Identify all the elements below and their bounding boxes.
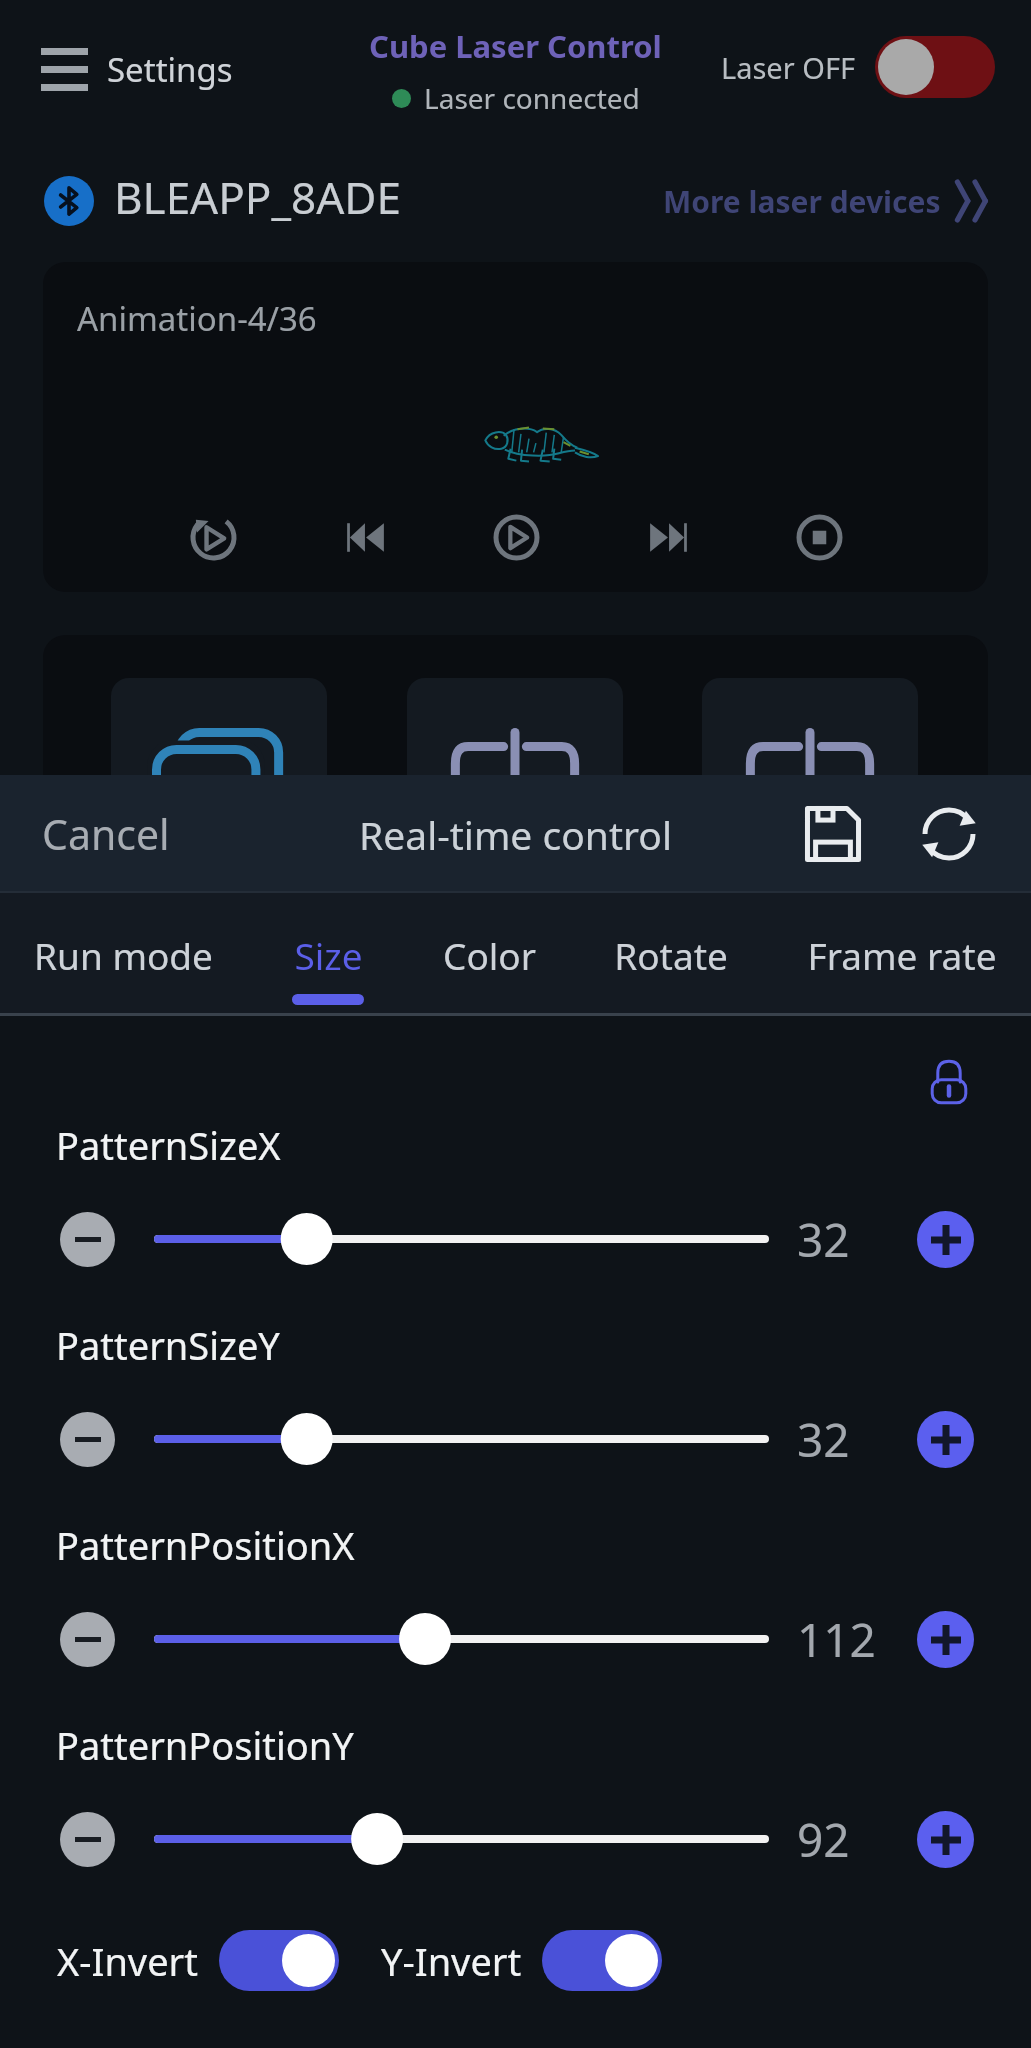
staticText: PatternSizeX bbox=[56, 1119, 281, 1171]
staticText: Y-Invert bbox=[381, 1935, 522, 1987]
button[interactable]: Increase PatternPositionX bbox=[917, 1611, 974, 1668]
staticText: Laser OFF bbox=[721, 48, 855, 87]
button[interactable]: Lock bbox=[913, 1046, 985, 1118]
button[interactable]: Size bbox=[292, 893, 364, 1016]
staticText: Laser connected bbox=[424, 79, 640, 117]
staticText: PatternPositionY bbox=[56, 1719, 354, 1771]
staticText: BLEAPP_8ADE bbox=[114, 167, 401, 227]
staticText: Real-time control bbox=[359, 808, 672, 861]
button[interactable]: Decrease PatternSizeY bbox=[60, 1412, 115, 1467]
button[interactable]: Cancel bbox=[42, 806, 170, 862]
button[interactable]: X-Invert bbox=[57, 1930, 339, 1991]
button[interactable] bbox=[407, 678, 623, 868]
button[interactable]: Decrease PatternPositionX bbox=[60, 1612, 115, 1667]
staticText: Size bbox=[294, 930, 363, 980]
button[interactable]: Increase PatternSizeY bbox=[917, 1411, 974, 1468]
staticText: Color bbox=[443, 930, 536, 980]
staticText: Animation-4/36 bbox=[77, 296, 317, 341]
staticText: More laser devices bbox=[663, 181, 941, 222]
staticText: 32 bbox=[797, 1408, 850, 1471]
button[interactable]: Decrease PatternSizeX bbox=[60, 1212, 115, 1267]
button[interactable]: Frame rate bbox=[807, 893, 997, 1016]
button[interactable]: Previous bbox=[331, 503, 399, 571]
button[interactable]: Next bbox=[634, 503, 702, 571]
button[interactable]: Increase PatternSizeX bbox=[917, 1211, 974, 1268]
button[interactable]: Play bbox=[482, 503, 550, 571]
staticText: 112 bbox=[797, 1608, 876, 1671]
button[interactable]: Save bbox=[795, 796, 871, 872]
staticText: Run mode bbox=[34, 930, 213, 980]
button[interactable] bbox=[111, 678, 327, 868]
button[interactable]: More laser devices bbox=[663, 179, 995, 223]
button[interactable]: Increase PatternPositionY bbox=[917, 1811, 974, 1868]
button[interactable]: Rotate bbox=[614, 893, 728, 1016]
staticText: 92 bbox=[797, 1808, 850, 1871]
button[interactable]: Decrease PatternPositionY bbox=[60, 1812, 115, 1867]
staticText: Frame rate bbox=[807, 930, 997, 980]
button[interactable] bbox=[702, 678, 918, 868]
staticText: Rotate bbox=[614, 930, 728, 980]
staticText: PatternPositionX bbox=[56, 1519, 355, 1571]
staticText: Settings bbox=[107, 47, 233, 92]
button[interactable]: Color bbox=[443, 893, 536, 1016]
button[interactable]: Run mode bbox=[34, 893, 213, 1016]
button[interactable]: Stop bbox=[785, 503, 853, 571]
button[interactable]: Settings bbox=[41, 48, 233, 98]
button[interactable]: Refresh bbox=[911, 796, 987, 872]
button[interactable]: Y-Invert bbox=[381, 1930, 662, 1991]
staticText: 32 bbox=[797, 1208, 850, 1271]
staticText: X-Invert bbox=[57, 1935, 199, 1987]
button[interactable]: Laser OFF bbox=[721, 36, 995, 98]
staticText: PatternSizeY bbox=[56, 1319, 280, 1371]
staticText: Cube Laser Control bbox=[369, 25, 662, 67]
button[interactable]: Replay bbox=[179, 503, 247, 571]
